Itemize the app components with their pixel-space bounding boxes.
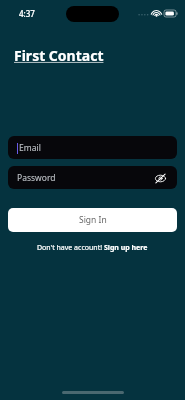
button[interactable]: Email [8,136,177,159]
button[interactable]: Don't have account! [8,243,177,253]
staticText: Password [17,172,56,184]
button[interactable]: Show password [152,170,168,186]
button[interactable]: Sign In [8,208,177,232]
button[interactable]: Password [8,166,177,189]
staticText: Sign In [79,214,107,226]
staticText: First Contact [14,46,104,65]
staticText: 4:37 [19,8,35,19]
staticText: Sign up here [104,243,148,253]
staticText: Email [19,142,41,154]
staticText: Don't have account! [37,243,104,253]
